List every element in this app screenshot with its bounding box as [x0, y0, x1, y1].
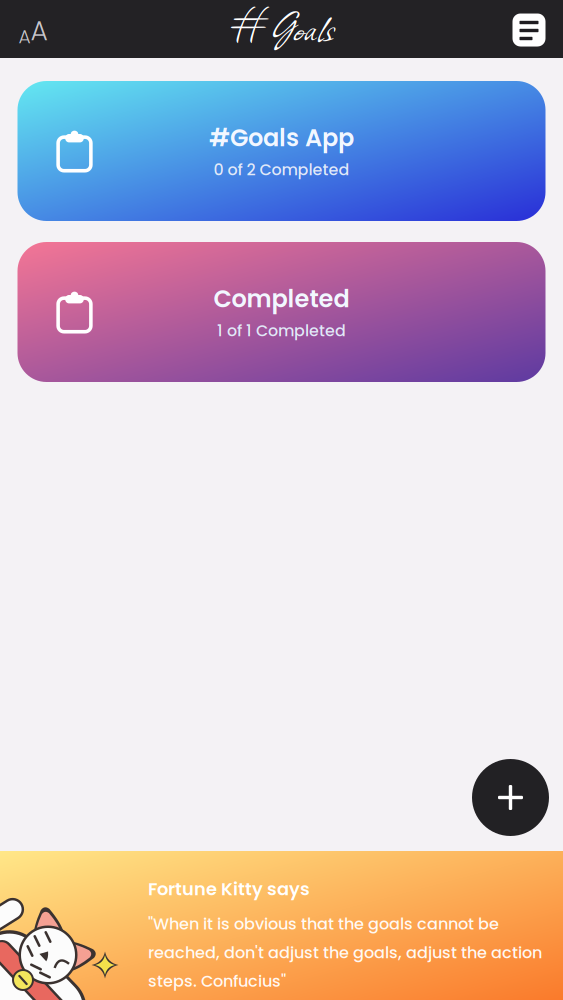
- button[interactable]: List options: [507, 8, 551, 52]
- staticText: Fortune Kitty says: [148, 877, 310, 902]
- staticText: "When it is obvious that the goals canno…: [148, 913, 542, 992]
- button[interactable]: Text size: [7, 9, 59, 53]
- button[interactable]: #Goals App: [17, 81, 545, 221]
- staticText: Completed: [213, 282, 349, 316]
- button[interactable]: Add goal: [472, 759, 549, 836]
- staticText: 1 of 1 Completed: [217, 320, 346, 342]
- button[interactable]: Completed: [17, 242, 545, 382]
- staticText: #Goals App: [209, 121, 354, 155]
- staticText: 0 of 2 Completed: [213, 159, 349, 181]
- staticText: A: [18, 23, 30, 50]
- staticText: #Goals: [230, 0, 334, 57]
- staticText: A: [30, 12, 47, 50]
